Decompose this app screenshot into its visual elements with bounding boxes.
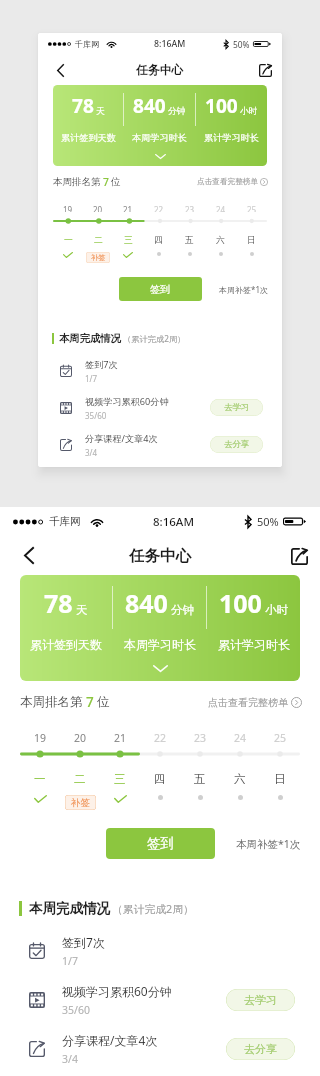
staticText: 天: [76, 603, 88, 617]
staticText: 19: [34, 731, 47, 742]
staticText: 二: [74, 772, 86, 784]
button[interactable]: Share: [254, 59, 277, 82]
staticText: 100: [219, 586, 262, 620]
staticText: 24: [216, 204, 226, 212]
staticText: 一: [64, 235, 73, 244]
button[interactable]: Back: [48, 58, 72, 82]
staticText: 日: [274, 772, 286, 784]
staticText: 1/7: [62, 954, 78, 968]
staticText: 35/60: [62, 1003, 90, 1017]
button[interactable]: Share: [284, 541, 314, 571]
staticText: 四: [154, 235, 163, 244]
button[interactable]: 签到: [106, 828, 215, 859]
staticText: 25: [247, 204, 257, 212]
staticText: 五: [185, 235, 194, 244]
staticText: 78: [72, 93, 94, 119]
button[interactable]: 分享课程/文章4次: [0, 1024, 320, 1073]
staticText: 六: [216, 235, 225, 244]
staticText: 千库网: [75, 39, 99, 49]
staticText: 分享课程/文章4次: [85, 432, 158, 444]
staticText: 本周完成情况: [59, 332, 121, 345]
staticText: 21: [114, 731, 127, 742]
button[interactable]: 分享课程/文章4次: [38, 426, 282, 463]
button[interactable]: 去学习: [226, 989, 295, 1011]
staticText: 去分享: [244, 1042, 277, 1056]
staticText: 21: [123, 204, 133, 212]
staticText: 20: [74, 731, 87, 742]
staticText: 点击查看完整榜单: [208, 696, 288, 709]
staticText: 一: [34, 772, 46, 784]
staticText: 去学习: [244, 993, 277, 1007]
staticText: 3/4: [62, 1052, 78, 1066]
staticText: 100: [205, 93, 238, 119]
staticText: 千库网: [49, 515, 81, 528]
staticText: 8:16AM: [154, 38, 186, 50]
button[interactable]: 签到: [119, 277, 202, 301]
staticText: 签到: [150, 283, 171, 296]
staticText: （累计完成2周）: [123, 333, 186, 344]
staticText: 去学习: [224, 402, 250, 413]
staticText: 任务中心: [136, 63, 184, 78]
staticText: 累计学习时长: [218, 637, 290, 652]
button[interactable]: 去学习: [210, 399, 263, 416]
staticText: 日: [247, 235, 256, 244]
staticText: 22: [154, 731, 167, 742]
staticText: 本周学习时长: [124, 637, 196, 652]
button[interactable]: 签到7次: [0, 926, 320, 975]
staticText: 去分享: [224, 439, 250, 450]
button[interactable]: 补签: [65, 795, 96, 810]
staticText: 小时: [265, 603, 288, 617]
staticText: 本周学习时长: [132, 132, 187, 144]
staticText: 840: [133, 93, 166, 119]
staticText: 补签: [91, 253, 106, 262]
staticText: 累计签到天数: [61, 132, 116, 144]
staticText: 小时: [240, 106, 258, 117]
staticText: 六: [234, 772, 246, 784]
staticText: 天: [96, 106, 105, 117]
staticText: 3/4: [85, 447, 98, 458]
staticText: 22: [154, 204, 164, 212]
staticText: 78: [44, 586, 73, 620]
staticText: 位: [111, 176, 121, 188]
staticText: 分享课程/文章4次: [62, 1032, 158, 1048]
staticText: 补签: [71, 797, 90, 809]
staticText: 840: [125, 586, 168, 620]
staticText: 25: [274, 731, 287, 742]
staticText: 三: [124, 235, 133, 244]
staticText: 签到7次: [62, 934, 105, 950]
staticText: 35/60: [85, 410, 107, 421]
staticText: 五: [194, 772, 206, 784]
staticText: 8:16AM: [153, 514, 194, 530]
button[interactable]: 签到7次: [38, 352, 282, 389]
staticText: 7: [86, 693, 94, 711]
staticText: 20: [93, 204, 103, 212]
staticText: 任务中心: [129, 546, 191, 566]
staticText: （累计完成2周）: [112, 901, 194, 916]
staticText: 本周完成情况: [29, 900, 110, 917]
button[interactable]: 补签: [86, 252, 110, 263]
staticText: 视频学习累积60分钟: [85, 395, 169, 407]
staticText: 19: [63, 204, 73, 212]
staticText: 分钟: [171, 603, 194, 617]
staticText: 累计签到天数: [30, 637, 102, 652]
staticText: 1/7: [85, 373, 98, 384]
staticText: 24: [234, 731, 247, 742]
staticText: 点击查看完整榜单: [197, 177, 258, 187]
staticText: 分钟: [168, 106, 186, 117]
staticText: 本周补签*1次: [236, 837, 301, 851]
staticText: 累计学习时长: [204, 132, 259, 144]
button[interactable]: 去分享: [226, 1038, 295, 1060]
staticText: 本周排名第: [20, 694, 83, 710]
staticText: 签到7次: [85, 358, 118, 370]
button[interactable]: 视频学习累积60分钟: [38, 389, 282, 426]
button[interactable]: 点击查看完整榜单: [208, 696, 302, 709]
button[interactable]: 去分享: [210, 436, 263, 453]
button[interactable]: 点击查看完整榜单: [197, 177, 268, 187]
button[interactable]: 视频学习累积60分钟: [0, 975, 320, 1024]
staticText: 位: [97, 694, 110, 710]
button[interactable]: Back: [13, 540, 44, 571]
staticText: 50%: [233, 39, 250, 50]
staticText: 签到: [147, 835, 174, 852]
staticText: 四: [154, 772, 166, 784]
staticText: 本周排名第: [53, 176, 101, 188]
